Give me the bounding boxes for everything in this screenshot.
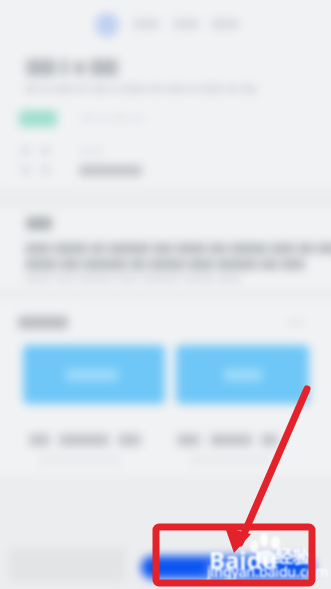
button[interactable]: Profile: [95, 13, 119, 37]
staticText: 经验: [275, 546, 311, 569]
staticText: Baidu: [209, 543, 278, 576]
staticText: 亦学习: [207, 560, 246, 576]
button[interactable]: [141, 556, 314, 579]
button[interactable]: [23, 345, 165, 404]
staticText: jingyan.baidu.com: [207, 562, 329, 581]
button[interactable]: [176, 345, 309, 404]
